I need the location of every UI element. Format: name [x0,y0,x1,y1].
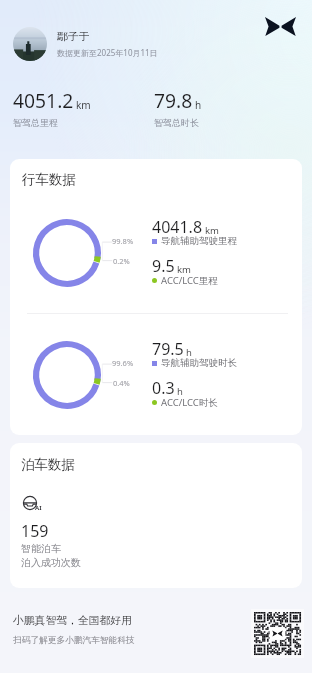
staticText: AI [35,504,42,512]
staticText: 4041.8 [152,216,203,238]
staticText: 行车数据 [22,171,76,188]
staticText: 99.6% [112,358,134,368]
staticText: 99.8% [112,236,134,246]
staticText: h [195,98,202,112]
staticText: km [205,224,219,237]
staticText: 扫码了解更多小鹏汽车智能科技 [13,635,135,646]
button[interactable]: QR code [251,609,304,658]
staticText: 泊入成功次数 [21,556,81,569]
staticText: km [76,98,91,112]
staticText: 智能泊车 [21,542,61,555]
staticText: 泊车数据 [21,456,75,473]
staticText: 导航辅助驾驶时长 [161,357,237,369]
staticText: ACC/LCC时长 [161,396,218,409]
button[interactable]: XPeng [261,7,299,45]
staticText: 鄢子于 [57,30,90,44]
staticText: 导航辅助驾驶里程 [161,235,237,247]
staticText: ACC/LCC里程 [161,274,218,287]
staticText: km [177,263,191,276]
staticText: 159 [21,520,49,542]
staticText: 4051.2 [13,87,74,113]
staticText: 79.8 [154,87,193,113]
staticText: 智驾总时长 [154,117,199,128]
staticText: h [177,385,183,398]
staticText: 0.3 [152,377,175,399]
staticText: 数据更新至2025年10月11日 [57,47,158,58]
staticText: 小鹏真智驾，全国都好用 [13,614,132,628]
staticText: 79.5 [152,338,184,360]
staticText: 智驾总里程 [13,117,58,128]
staticText: 9.5 [152,255,175,277]
staticText: 0.2% [113,256,130,266]
staticText: h [186,346,192,359]
staticText: 0.4% [113,378,130,388]
